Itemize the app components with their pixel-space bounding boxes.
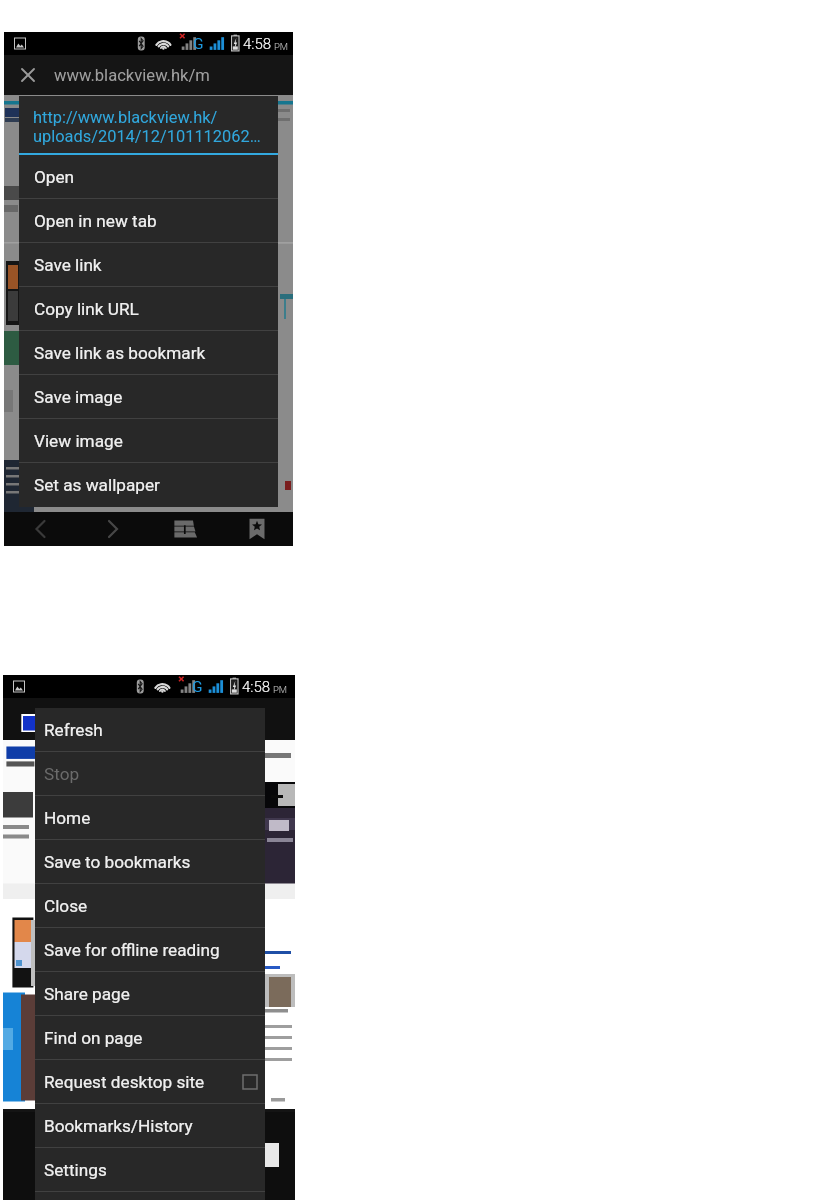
button[interactable]: Settings [35, 1148, 265, 1192]
staticText: Refresh [44, 720, 103, 740]
button[interactable]: Stop [35, 752, 265, 796]
staticText: Close [44, 896, 88, 916]
button[interactable]: Find on page [35, 1016, 265, 1060]
staticText: Open [34, 167, 75, 187]
staticText: Request desktop site [44, 1072, 205, 1092]
button[interactable]: Save for offline reading [35, 928, 265, 972]
button[interactable]: Close [35, 884, 265, 928]
staticText: G [193, 35, 204, 53]
staticText: G [192, 678, 203, 696]
staticText: 4:58 [243, 35, 272, 53]
staticText: PM [273, 684, 288, 695]
button[interactable]: Save image [19, 375, 278, 419]
button[interactable]: View image [19, 419, 278, 463]
button[interactable]: Home [35, 796, 265, 840]
staticText: 4:58 [242, 678, 271, 696]
button[interactable]: Save link [19, 243, 278, 287]
button[interactable]: Back [4, 512, 77, 546]
staticText: Save link as bookmark [34, 343, 206, 363]
button[interactable]: Open in new tab [19, 199, 278, 243]
staticText: Save image [34, 387, 123, 407]
button[interactable]: Request desktop site [35, 1060, 265, 1104]
button[interactable]: Bookmarks/History [35, 1104, 265, 1148]
button[interactable]: Bookmarks [221, 512, 293, 546]
staticText: http://www.blackview.hk/ uploads/2014/12… [33, 108, 261, 146]
staticText: Stop [44, 764, 80, 784]
button[interactable]: Set as wallpaper [19, 463, 278, 507]
staticText: Set as wallpaper [34, 475, 160, 495]
staticText: Home [44, 808, 91, 828]
button[interactable]: Refresh [35, 708, 265, 752]
staticText: www.blackview.hk/m [54, 66, 210, 85]
staticText: Save link [34, 255, 102, 275]
button[interactable]: Share page [35, 972, 265, 1016]
staticText: View image [34, 431, 123, 451]
staticText: Save to bookmarks [44, 852, 191, 872]
button[interactable]: Forward [77, 512, 149, 546]
button[interactable]: Open [19, 155, 278, 199]
staticText: PM [274, 41, 289, 52]
button[interactable]: Close [4, 55, 293, 95]
staticText: Bookmarks/History [44, 1116, 193, 1136]
button[interactable]: Save to bookmarks [35, 840, 265, 884]
staticText: Open in new tab [34, 211, 157, 231]
button[interactable]: Save link as bookmark [19, 331, 278, 375]
button[interactable]: Tabs [149, 512, 221, 546]
button[interactable]: http://www.blackview.hk/ uploads/2014/12… [19, 96, 278, 153]
staticText: Share page [44, 984, 130, 1004]
staticText: Find on page [44, 1028, 143, 1048]
button[interactable]: Close [15, 62, 41, 88]
staticText: Save for offline reading [44, 940, 220, 960]
staticText: Settings [44, 1160, 107, 1180]
staticText: Copy link URL [34, 299, 139, 319]
button[interactable]: Copy link URL [19, 287, 278, 331]
